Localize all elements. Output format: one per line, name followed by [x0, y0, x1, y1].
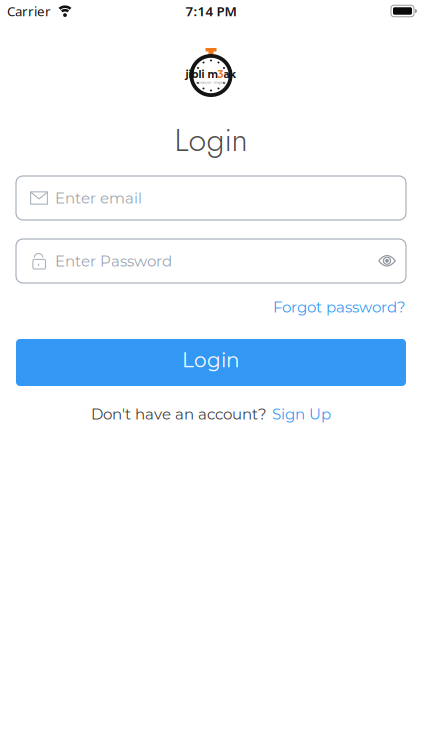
- staticText: 3: [217, 68, 223, 80]
- staticText: ak: [223, 68, 236, 80]
- staticText: Enter Password: [55, 252, 172, 270]
- staticText: Login: [174, 117, 247, 163]
- staticText: Carrier: [7, 2, 51, 20]
- staticText: Login: [182, 348, 240, 372]
- staticText: jibli m: [185, 68, 217, 80]
- staticText: 7:14 PM: [185, 2, 236, 20]
- staticText: Don't have an account?: [91, 405, 267, 423]
- staticText: Forgot password?: [273, 298, 406, 316]
- staticText: Sign Up: [272, 405, 331, 423]
- staticText: · Livraison · Rapide ·: [194, 80, 228, 85]
- staticText: Enter email: [55, 189, 142, 207]
